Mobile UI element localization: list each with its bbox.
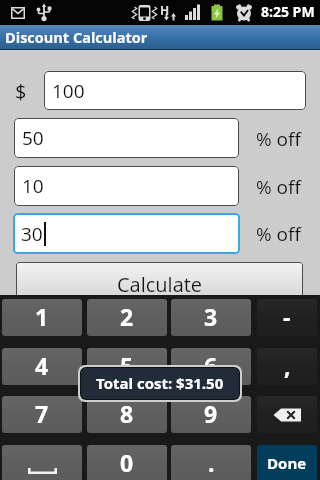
button[interactable]: , — [257, 348, 317, 385]
staticText: Calculate — [117, 271, 203, 298]
button[interactable]: 8 — [87, 396, 167, 433]
staticText: , — [284, 350, 291, 381]
staticText: 9 — [204, 398, 218, 429]
button[interactable]: 1 — [2, 299, 82, 336]
button[interactable]: Done — [257, 445, 317, 480]
button[interactable]: 5 — [87, 348, 167, 385]
staticText: 3 — [204, 301, 218, 332]
button[interactable]: 3 — [171, 299, 251, 336]
staticText: 2 — [120, 301, 134, 332]
button[interactable]: 30 — [13, 213, 240, 254]
button[interactable]: 2 — [87, 299, 167, 336]
staticText: 1 — [35, 301, 49, 332]
staticText: Total cost: $31.50 — [96, 373, 224, 393]
button[interactable]: Delete — [257, 396, 317, 433]
button[interactable]: 6 — [171, 348, 251, 385]
staticText: H — [160, 2, 170, 18]
staticText: Discount Calculator — [5, 28, 148, 48]
staticText: - — [283, 301, 291, 332]
staticText: 4 — [35, 350, 49, 381]
staticText: % off — [256, 221, 301, 247]
button[interactable]: 9 — [171, 396, 251, 433]
staticText: 6 — [204, 350, 218, 381]
staticText: . — [208, 447, 215, 478]
button[interactable]: Space — [2, 445, 82, 480]
button[interactable]: 10 — [14, 166, 239, 206]
staticText: 100 — [52, 78, 85, 104]
staticText: 0 — [120, 447, 134, 478]
button[interactable]: 7 — [2, 396, 82, 433]
other: Space — [28, 468, 57, 474]
other: Delete — [273, 408, 302, 422]
staticText: % off — [256, 174, 301, 200]
staticText: 5 — [120, 350, 134, 381]
staticText: 7 — [35, 398, 49, 429]
button[interactable]: - — [257, 299, 317, 336]
staticText: $ — [15, 78, 27, 105]
staticText: Done — [267, 453, 307, 473]
button[interactable]: . — [171, 445, 251, 480]
button[interactable]: Calculate — [16, 262, 303, 306]
button[interactable]: 4 — [2, 348, 82, 385]
staticText: % off — [256, 126, 301, 152]
button[interactable]: Total cost: $31.50 — [81, 368, 239, 399]
staticText: 50 — [22, 125, 44, 151]
button[interactable]: 100 — [44, 71, 306, 110]
staticText: 30 — [21, 221, 43, 247]
staticText: 8:25 PM — [261, 2, 315, 21]
staticText: 8 — [120, 398, 134, 429]
staticText: 10 — [22, 173, 44, 199]
button[interactable]: 0 — [87, 445, 167, 480]
button[interactable]: 50 — [14, 118, 239, 158]
